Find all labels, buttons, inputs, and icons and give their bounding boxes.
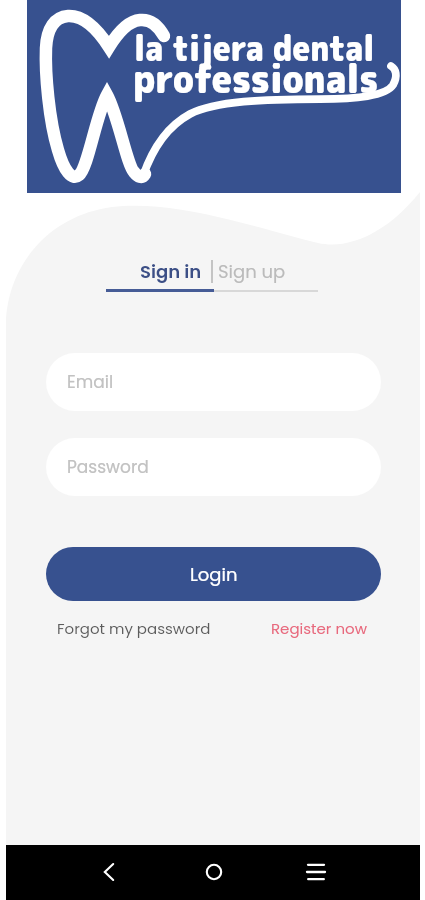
button[interactable]: Recent apps	[294, 850, 338, 894]
button[interactable]: Sign in	[106, 256, 211, 287]
button[interactable]: Home	[192, 850, 236, 894]
staticText: Password	[67, 455, 149, 479]
button[interactable]: Sign up	[213, 256, 318, 287]
button[interactable]: Forgot my password	[57, 618, 211, 639]
button[interactable]: Login	[46, 547, 381, 601]
staticText: Forgot my password	[57, 618, 211, 639]
button[interactable]: Back	[87, 850, 131, 894]
staticText: Register now	[271, 618, 367, 639]
button[interactable]: Register now	[271, 618, 367, 639]
button[interactable]: Password	[46, 438, 381, 496]
staticText: la tijera dental	[134, 22, 375, 72]
staticText: professionals	[133, 50, 379, 106]
button[interactable]: Email	[46, 353, 381, 411]
staticText: Login	[190, 562, 238, 587]
staticText: Sign up	[218, 259, 286, 284]
staticText: Sign in	[140, 259, 202, 284]
staticText: Email	[67, 370, 114, 394]
